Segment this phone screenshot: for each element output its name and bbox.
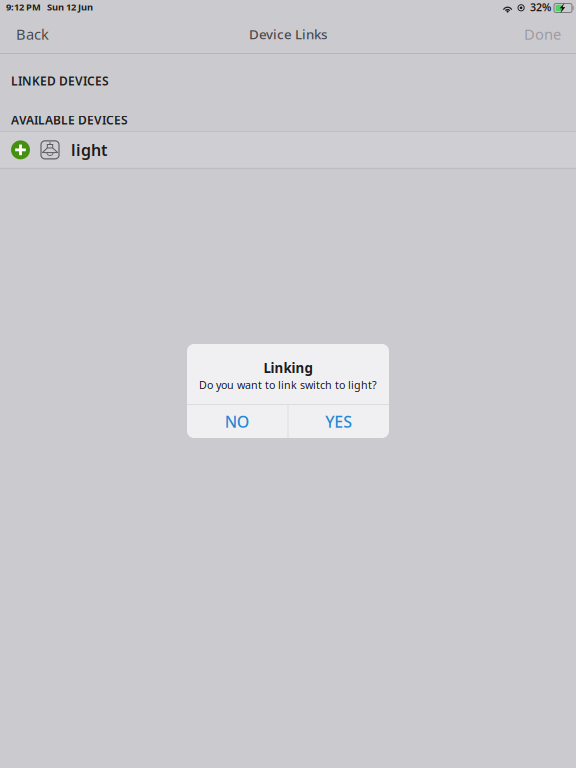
button[interactable]: light [0,132,576,168]
staticText: AVAILABLE DEVICES [11,112,128,128]
button[interactable]: YES [288,405,389,438]
staticText: Do you want to link switch to light? [199,378,377,392]
staticText: Sun 12 Jun [47,1,93,13]
staticText: NO [225,411,250,432]
staticText: 32% [530,0,551,14]
button[interactable]: Done [510,18,576,52]
button[interactable]: Back [0,18,63,52]
button[interactable]: NO [187,405,287,438]
staticText: Device Links [249,25,327,43]
staticText: Linking [263,359,312,377]
staticText: LINKED DEVICES [11,73,109,89]
staticText: Done [524,24,561,44]
staticText: YES [325,411,352,432]
staticText: 9:12 PM [6,1,41,13]
staticText: Back [16,24,49,44]
staticText: light [71,139,107,160]
